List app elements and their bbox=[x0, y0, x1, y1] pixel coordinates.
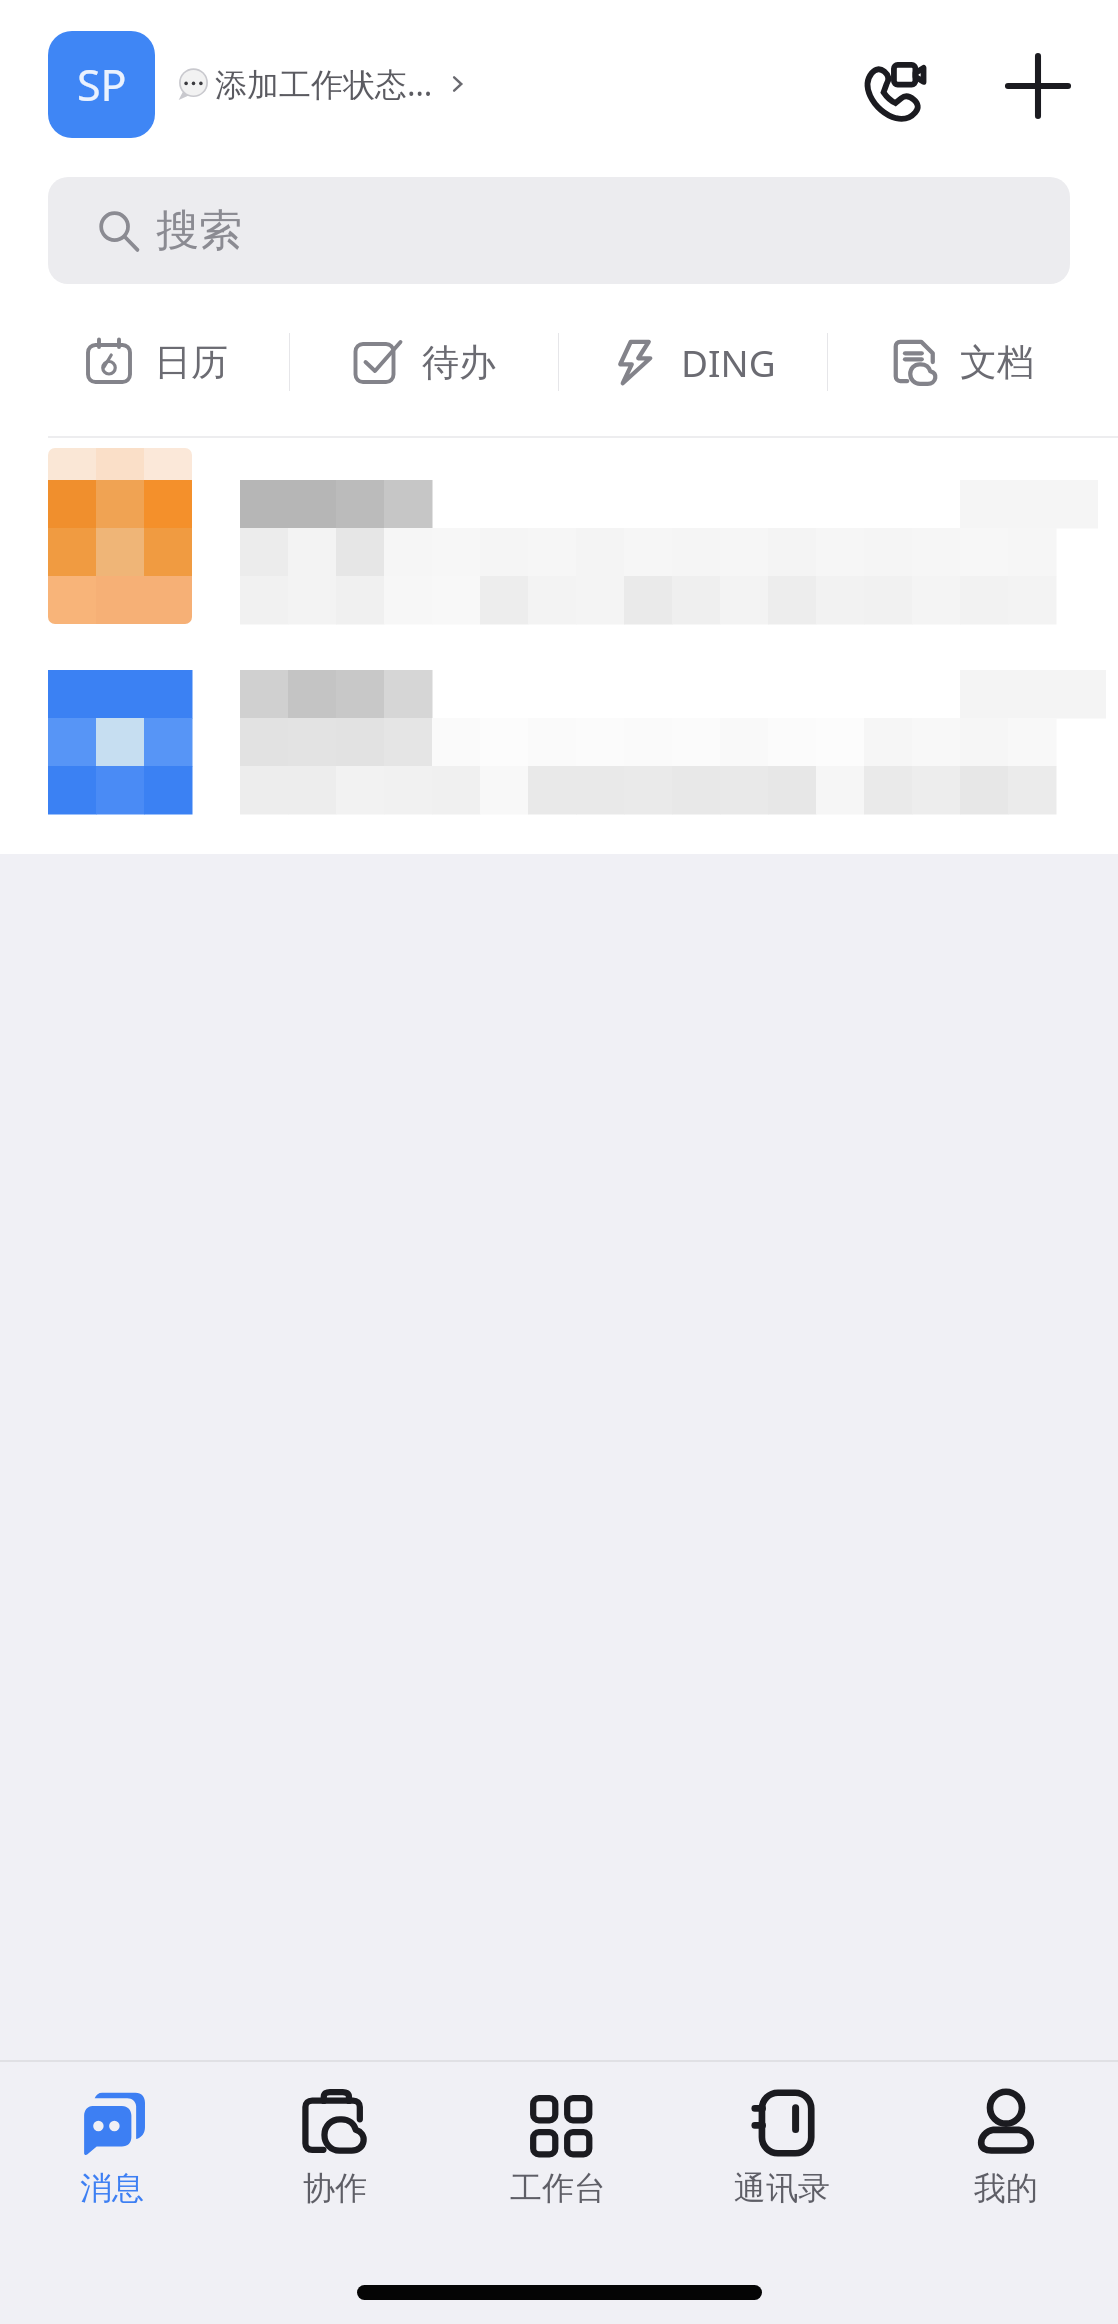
button[interactable]: Conversation 1 bbox=[0, 438, 1118, 664]
button[interactable]: 消息 bbox=[0, 2062, 223, 2242]
button[interactable]: DING bbox=[559, 317, 827, 407]
staticText: 消息 bbox=[80, 2168, 144, 2208]
button[interactable]: 通讯录 bbox=[670, 2062, 894, 2242]
staticText: 日历 bbox=[154, 339, 228, 386]
button[interactable]: 文档 bbox=[828, 317, 1096, 407]
staticText: SP bbox=[77, 55, 127, 114]
button[interactable]: 日历 bbox=[22, 317, 289, 407]
button[interactable]: Profile bbox=[48, 31, 155, 138]
staticText: 添加工作状态… bbox=[215, 62, 433, 106]
button[interactable]: Conversation 2 bbox=[0, 664, 1118, 848]
button[interactable]: 待办 bbox=[290, 317, 558, 407]
button[interactable]: Set work status bbox=[175, 62, 469, 106]
staticText: 搜索 bbox=[156, 204, 242, 258]
staticText: 我的 bbox=[974, 2168, 1038, 2208]
staticText: 待办 bbox=[422, 339, 496, 386]
staticText: 协作 bbox=[303, 2168, 367, 2208]
staticText: 工作台 bbox=[510, 2168, 606, 2208]
button[interactable]: 协作 bbox=[223, 2062, 446, 2242]
staticText: 文档 bbox=[960, 339, 1034, 386]
button[interactable]: Add bbox=[982, 30, 1094, 142]
button[interactable]: 搜索 bbox=[48, 177, 1070, 284]
staticText: DING bbox=[681, 337, 776, 387]
button[interactable]: 我的 bbox=[894, 2062, 1118, 2242]
staticText: 通讯录 bbox=[734, 2168, 830, 2208]
button[interactable]: 工作台 bbox=[446, 2062, 670, 2242]
button[interactable]: Video call bbox=[842, 30, 954, 142]
